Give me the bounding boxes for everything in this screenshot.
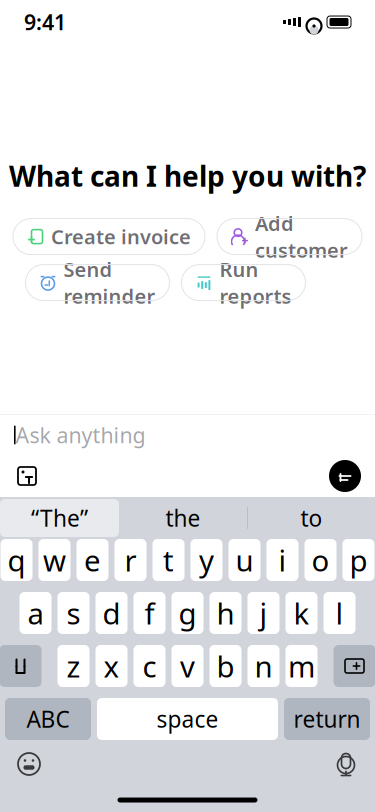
staticText: space (156, 704, 218, 734)
staticText: q (7, 540, 25, 579)
staticText: c (142, 646, 156, 685)
button[interactable]: g (171, 592, 203, 634)
staticText: ABC (26, 704, 69, 734)
button[interactable]: to (248, 499, 375, 537)
staticText: o (311, 540, 329, 579)
staticText: d (102, 593, 120, 632)
button[interactable]: Dictate (329, 747, 363, 781)
button[interactable]: x (95, 645, 127, 687)
staticText: u (235, 540, 253, 579)
button[interactable]: return (284, 698, 370, 740)
button[interactable]: f (133, 592, 165, 634)
staticText: p (349, 540, 367, 579)
button[interactable]: p (342, 539, 374, 581)
staticText: t (163, 540, 174, 579)
button[interactable]: t (152, 539, 184, 581)
staticText: j (259, 593, 267, 632)
button[interactable]: e (76, 539, 108, 581)
button[interactable]: w (38, 539, 70, 581)
staticText: l (335, 593, 343, 632)
staticText: b (216, 646, 234, 685)
button[interactable]: v (171, 645, 203, 687)
button[interactable]: a (19, 592, 51, 634)
button[interactable]: o (304, 539, 336, 581)
staticText: a (27, 593, 43, 632)
button[interactable]: “The” (0, 499, 119, 537)
button[interactable]: l (323, 592, 355, 634)
staticText: m (288, 646, 315, 685)
button[interactable]: u (228, 539, 260, 581)
staticText: y (199, 540, 214, 579)
staticText: v (180, 646, 195, 685)
button[interactable]: j (247, 592, 279, 634)
button[interactable]: q (0, 539, 32, 581)
staticText: k (293, 593, 309, 632)
staticText: Create invoice (51, 223, 191, 250)
staticText: What can I help you with? (9, 157, 366, 195)
button[interactable]: h (209, 592, 241, 634)
button[interactable]: y (190, 539, 222, 581)
staticText: Ask anything (16, 421, 146, 449)
button[interactable]: Shift (0, 645, 41, 687)
staticText: 9:41 (24, 8, 66, 36)
staticText: Add customer (255, 210, 348, 263)
button[interactable]: n (247, 645, 279, 687)
button[interactable]: m (285, 645, 317, 687)
staticText: Send reminder (63, 256, 155, 309)
button[interactable]: Attach photo (12, 461, 42, 491)
button[interactable]: Run reports (181, 265, 305, 301)
button[interactable]: space (97, 698, 278, 740)
staticText: r (124, 540, 136, 579)
staticText: f (144, 593, 154, 632)
staticText: “The” (31, 503, 88, 533)
button[interactable]: z (57, 645, 89, 687)
button[interactable]: Emoji (12, 747, 46, 781)
button[interactable]: Add customer (217, 219, 362, 255)
button[interactable]: c (133, 645, 165, 687)
button[interactable]: Create invoice (13, 219, 205, 255)
staticText: h (216, 593, 234, 632)
staticText: i (278, 540, 286, 579)
staticText: g (178, 593, 196, 632)
button[interactable]: r (114, 539, 146, 581)
button[interactable]: s (57, 592, 89, 634)
button[interactable]: b (209, 645, 241, 687)
staticText: n (254, 646, 272, 685)
staticText: to (300, 503, 322, 533)
staticText: s (66, 593, 80, 632)
staticText: return (293, 704, 360, 734)
button[interactable]: d (95, 592, 127, 634)
button[interactable]: Delete (333, 645, 375, 687)
button[interactable]: the (119, 499, 247, 537)
button[interactable]: ABC (5, 698, 91, 740)
staticText: Run reports (219, 256, 291, 309)
staticText: w (43, 540, 66, 579)
staticText: e (84, 540, 101, 579)
staticText: x (103, 646, 119, 685)
button[interactable]: Send (327, 458, 363, 494)
staticText: z (66, 646, 80, 685)
button[interactable]: k (285, 592, 317, 634)
button[interactable]: i (266, 539, 298, 581)
button[interactable]: Send reminder (25, 265, 169, 301)
staticText: the (165, 503, 200, 533)
